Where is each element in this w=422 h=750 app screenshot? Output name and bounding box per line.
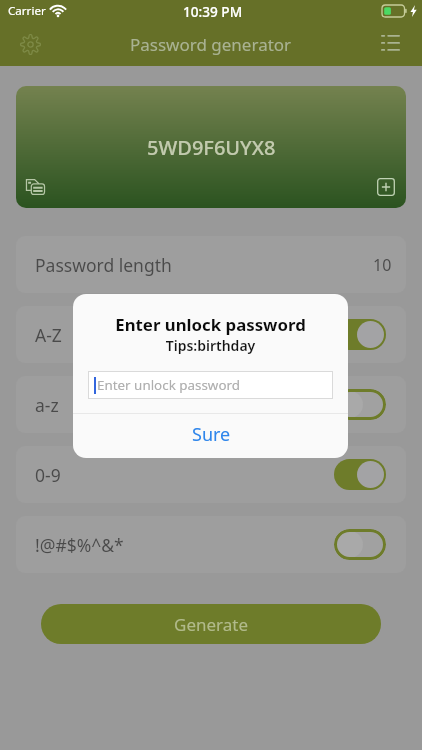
staticText: a-z bbox=[35, 393, 59, 417]
button[interactable]: 5WD9F6UYX8 bbox=[16, 86, 406, 208]
button[interactable]: Switch off bbox=[334, 389, 386, 420]
button[interactable]: Menu bbox=[381, 34, 400, 50]
button[interactable]: Settings bbox=[20, 34, 41, 55]
button[interactable]: Switch off bbox=[334, 529, 386, 560]
staticText: !@#$%^&* bbox=[35, 533, 124, 557]
staticText: Sure bbox=[192, 422, 231, 447]
staticText: 5WD9F6UYX8 bbox=[147, 134, 276, 161]
button[interactable]: Sure bbox=[73, 414, 348, 458]
button[interactable]: Generate bbox=[41, 604, 381, 644]
staticText: Enter unlock password bbox=[73, 313, 348, 336]
button[interactable]: !@#$%^&* bbox=[16, 516, 406, 573]
staticText: 0-9 bbox=[35, 463, 61, 487]
button[interactable]: a-z bbox=[16, 376, 406, 433]
staticText: Carrier bbox=[8, 3, 46, 19]
button[interactable]: Switch on bbox=[334, 319, 386, 350]
staticText: Enter unlock password bbox=[97, 376, 240, 394]
button[interactable]: Enter unlock password bbox=[88, 371, 333, 399]
staticText: 10:39 PM bbox=[183, 2, 243, 21]
button[interactable]: Add password bbox=[377, 178, 395, 196]
button[interactable]: Switch on bbox=[334, 459, 386, 490]
staticText: Password generator bbox=[130, 33, 292, 56]
staticText: Generate bbox=[174, 613, 249, 636]
staticText: A-Z bbox=[35, 323, 62, 347]
button[interactable]: A-Z bbox=[16, 306, 406, 363]
staticText: Tips:birthday bbox=[73, 336, 348, 355]
button[interactable]: 0-9 bbox=[16, 446, 406, 503]
button[interactable]: Password length bbox=[16, 236, 406, 293]
staticText: 10 bbox=[373, 254, 392, 276]
staticText: Password length bbox=[35, 253, 172, 277]
button[interactable]: Copy password bbox=[25, 176, 46, 197]
